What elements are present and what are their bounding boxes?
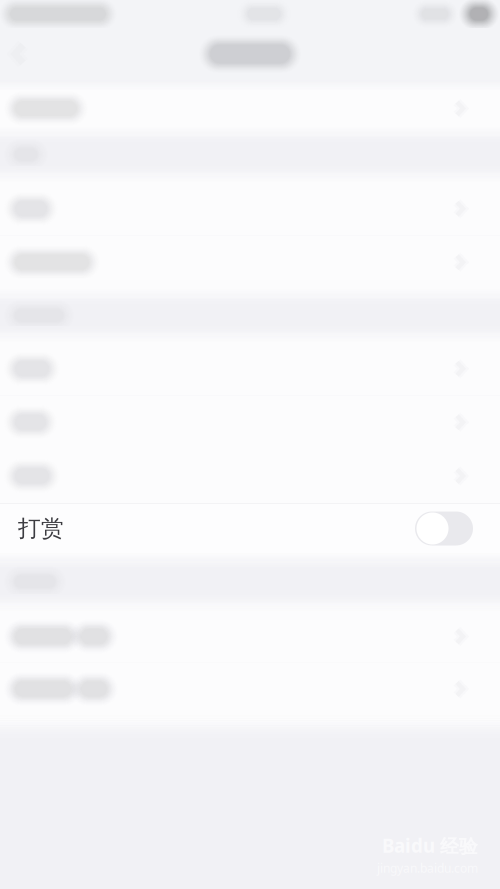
button[interactable]: [0, 395, 500, 449]
staticText: Baidu 经验: [382, 833, 478, 858]
button[interactable]: [0, 235, 500, 289]
button[interactable]: [0, 182, 500, 235]
button[interactable]: [0, 610, 500, 663]
staticText: 打赏: [18, 515, 64, 542]
button[interactable]: [0, 663, 500, 715]
button[interactable]: [0, 342, 500, 395]
button[interactable]: [0, 449, 500, 503]
button[interactable]: 打赏: [415, 511, 473, 545]
button[interactable]: [0, 90, 500, 127]
